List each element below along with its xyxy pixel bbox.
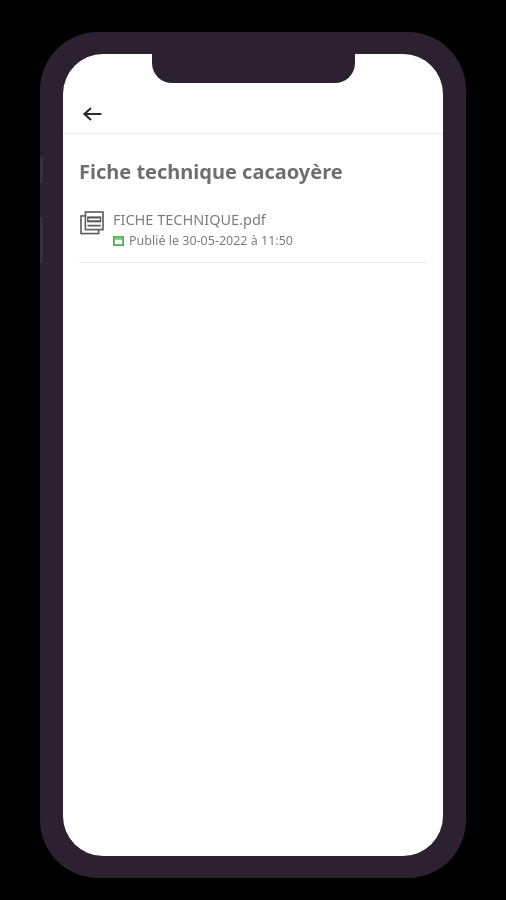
staticText: Fiche technique cacaoyère (79, 158, 343, 185)
button[interactable]: Back (71, 92, 115, 136)
staticText: FICHE TECHNIQUE.pdf (113, 209, 266, 229)
staticText: Publié le 30-05-2022 à 11:50 (129, 232, 293, 249)
button[interactable]: FICHE TECHNIQUE.pdf (63, 209, 443, 263)
